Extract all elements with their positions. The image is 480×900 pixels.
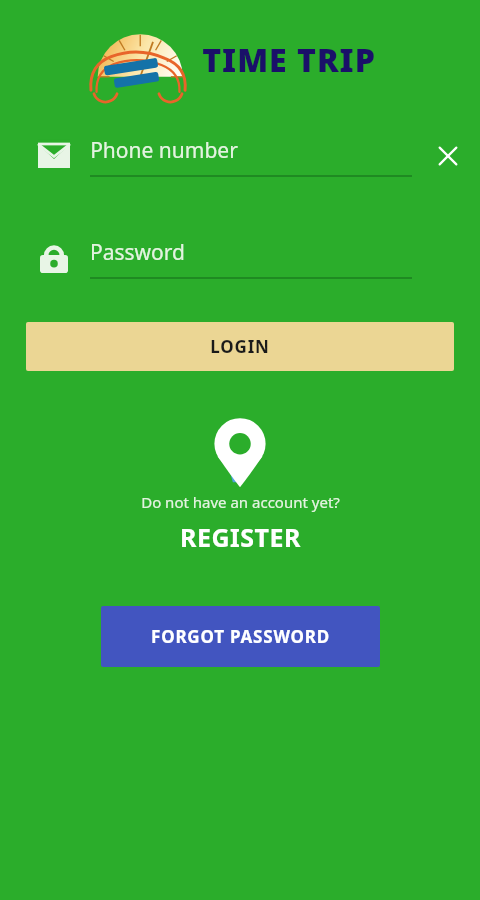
staticText: Phone number	[90, 136, 238, 165]
button[interactable]: Password	[0, 222, 480, 294]
button[interactable]: Clear	[428, 136, 468, 176]
button[interactable]: FORGOT PASSWORD	[101, 606, 380, 667]
staticText: Password	[90, 238, 185, 267]
staticText: TIME TRIP	[202, 38, 376, 82]
staticText: FORGOT PASSWORD	[151, 625, 330, 648]
staticText: LOGIN	[210, 335, 270, 358]
other: Location	[208, 416, 272, 488]
staticText: REGISTER	[180, 520, 301, 554]
staticText: Do not have an account yet?	[141, 492, 340, 512]
other: Password	[40, 243, 68, 273]
button[interactable]: Email	[0, 120, 480, 192]
button[interactable]: LOGIN	[26, 322, 454, 371]
other: Email	[38, 144, 70, 168]
button[interactable]: REGISTER	[180, 520, 301, 554]
